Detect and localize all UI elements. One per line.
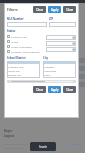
button[interactable]: Clear xyxy=(33,86,46,93)
staticText: Adamsville xyxy=(44,69,57,72)
button[interactable] xyxy=(46,41,76,46)
staticText: Status xyxy=(7,29,16,33)
staticText: Pending / Temp Remove xyxy=(11,50,40,53)
staticText: City xyxy=(43,56,49,60)
button[interactable]: Logout xyxy=(4,134,14,138)
staticText: Clear xyxy=(36,88,43,92)
staticText: Close xyxy=(66,8,74,12)
button[interactable]: Apply xyxy=(48,6,61,13)
staticText: All information source xyxy=(4,143,28,146)
staticText: Clear xyxy=(36,8,43,12)
staticText: School District xyxy=(7,56,26,60)
staticText: Adina xyxy=(44,73,51,76)
staticText: Filters xyxy=(7,7,18,12)
button[interactable]: Buyer xyxy=(4,129,13,133)
button[interactable]: Academy 20D xyxy=(7,61,40,78)
button[interactable]: Clear xyxy=(33,6,46,13)
staticText: not sure the users xyxy=(4,147,24,150)
staticText: Active Contingent xyxy=(11,45,32,48)
button[interactable]: Coming Soon xyxy=(7,34,44,39)
button[interactable]: Active xyxy=(7,39,44,44)
button[interactable]: Active Contingent xyxy=(7,44,44,49)
staticText: Apply xyxy=(51,88,59,92)
staticText: MLS Number xyxy=(7,17,24,21)
button[interactable]: Close xyxy=(63,86,76,93)
staticText: Coming Soon xyxy=(11,35,27,38)
staticText: Bartlett ISD xyxy=(8,73,21,76)
staticText: Austin ISD xyxy=(8,69,20,72)
staticText: Academy 20D xyxy=(8,65,24,68)
staticText: Academy xyxy=(44,65,55,68)
button[interactable]: Apply xyxy=(48,86,61,93)
button[interactable]: Disclaimer xyxy=(70,143,82,146)
staticText: ZIP xyxy=(49,17,54,21)
button[interactable] xyxy=(7,22,47,27)
button[interactable]: Close xyxy=(63,6,76,13)
staticText: Close xyxy=(66,88,74,92)
button[interactable] xyxy=(46,35,76,40)
staticText: Apply xyxy=(51,8,59,12)
button[interactable]: Academy xyxy=(43,61,76,78)
staticText: Active xyxy=(11,40,19,43)
button[interactable] xyxy=(46,47,76,52)
button[interactable] xyxy=(49,22,76,27)
button[interactable]: Search xyxy=(30,142,56,151)
button[interactable]: Pending / Temp Remove xyxy=(7,49,44,54)
staticText: Search xyxy=(39,145,48,149)
